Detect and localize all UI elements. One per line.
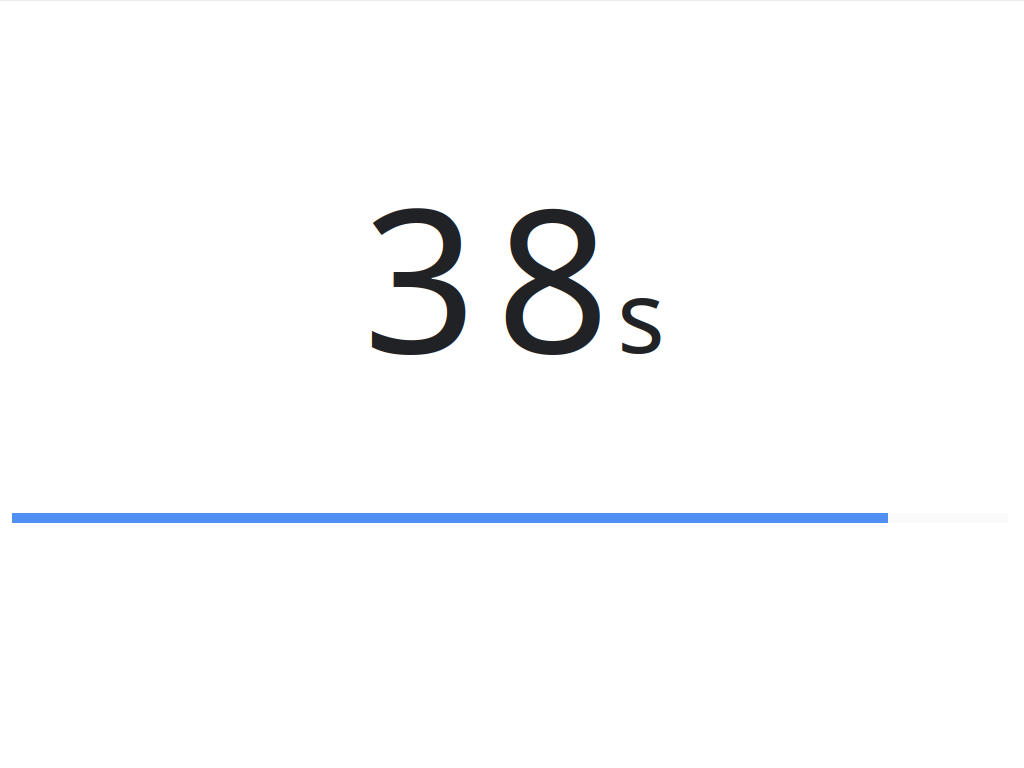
staticText: 3 xyxy=(363,144,477,408)
staticText: s xyxy=(617,248,665,381)
staticText: 8 xyxy=(496,144,610,408)
button[interactable]: 38 seconds remaining xyxy=(2,176,1024,376)
